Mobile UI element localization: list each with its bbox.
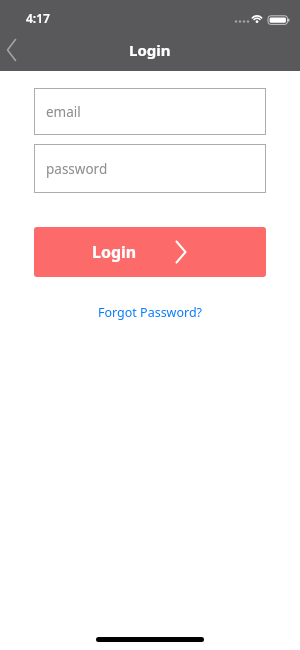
staticText: Login [129, 40, 171, 60]
staticText: password [46, 160, 108, 178]
staticText: 4:17 [26, 10, 50, 26]
button[interactable] [0, 29, 28, 71]
staticText: email [46, 103, 81, 121]
staticText: Login [92, 241, 137, 263]
button[interactable]: password [34, 144, 266, 193]
button[interactable]: email [34, 88, 266, 135]
button[interactable]: Login [34, 227, 266, 277]
button[interactable]: Forgot Password? [0, 304, 300, 321]
